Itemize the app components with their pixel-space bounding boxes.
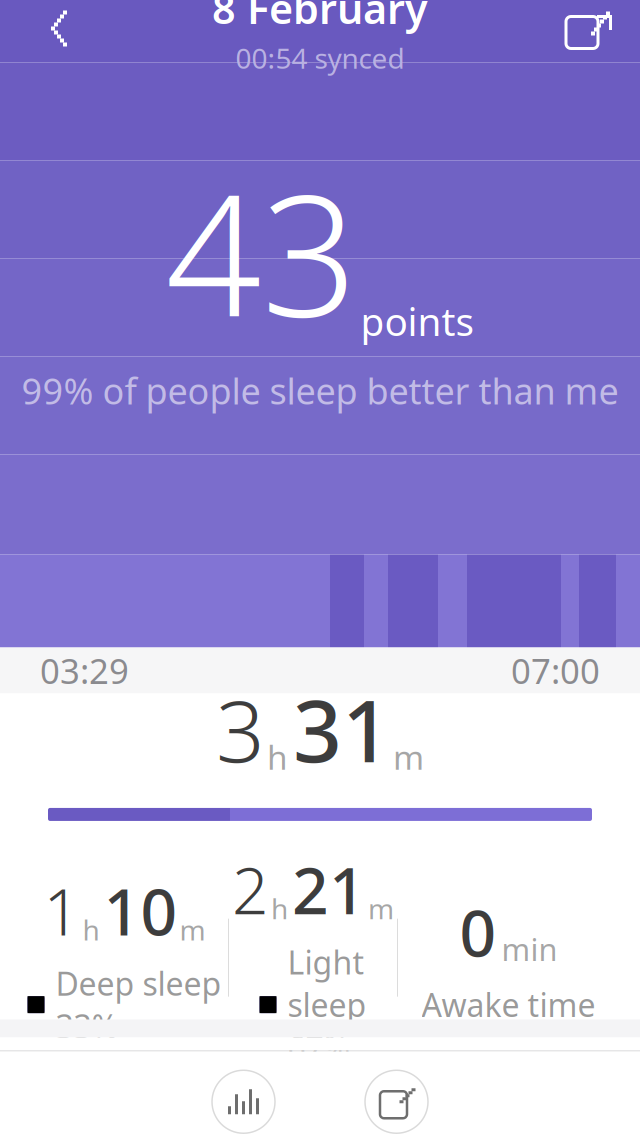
staticText: min <box>501 929 557 969</box>
staticText: Awake time <box>421 983 595 1026</box>
staticText: 31 <box>293 673 391 786</box>
staticText: 43 <box>165 140 357 363</box>
button[interactable]: Share <box>554 0 618 60</box>
staticText: 00:54 synced <box>235 39 404 77</box>
staticText: 10 <box>103 868 177 953</box>
staticText: Deep sleep 33% <box>55 962 221 1047</box>
staticText: 1 <box>43 868 80 953</box>
staticText: 07:00 <box>511 647 600 693</box>
staticText: 03:29 <box>40 647 129 693</box>
staticText: 8 February <box>212 0 428 35</box>
staticText: h <box>82 911 99 948</box>
button[interactable]: History <box>180 1048 307 1136</box>
staticText: 0 <box>459 889 496 974</box>
staticText: h <box>267 735 288 779</box>
staticText: 21 <box>292 847 366 932</box>
staticText: 99% of people sleep better than me <box>21 367 618 414</box>
button[interactable]: Edit <box>333 1048 460 1136</box>
button[interactable]: Back <box>26 0 90 60</box>
staticText: points <box>360 295 474 347</box>
staticText: m <box>368 890 394 927</box>
staticText: 2 <box>232 847 269 932</box>
staticText: m <box>393 735 424 779</box>
staticText: h <box>271 890 288 927</box>
staticText: m <box>179 911 205 948</box>
staticText: Light sleep 67% <box>287 941 366 1068</box>
staticText: 3 <box>216 673 265 786</box>
